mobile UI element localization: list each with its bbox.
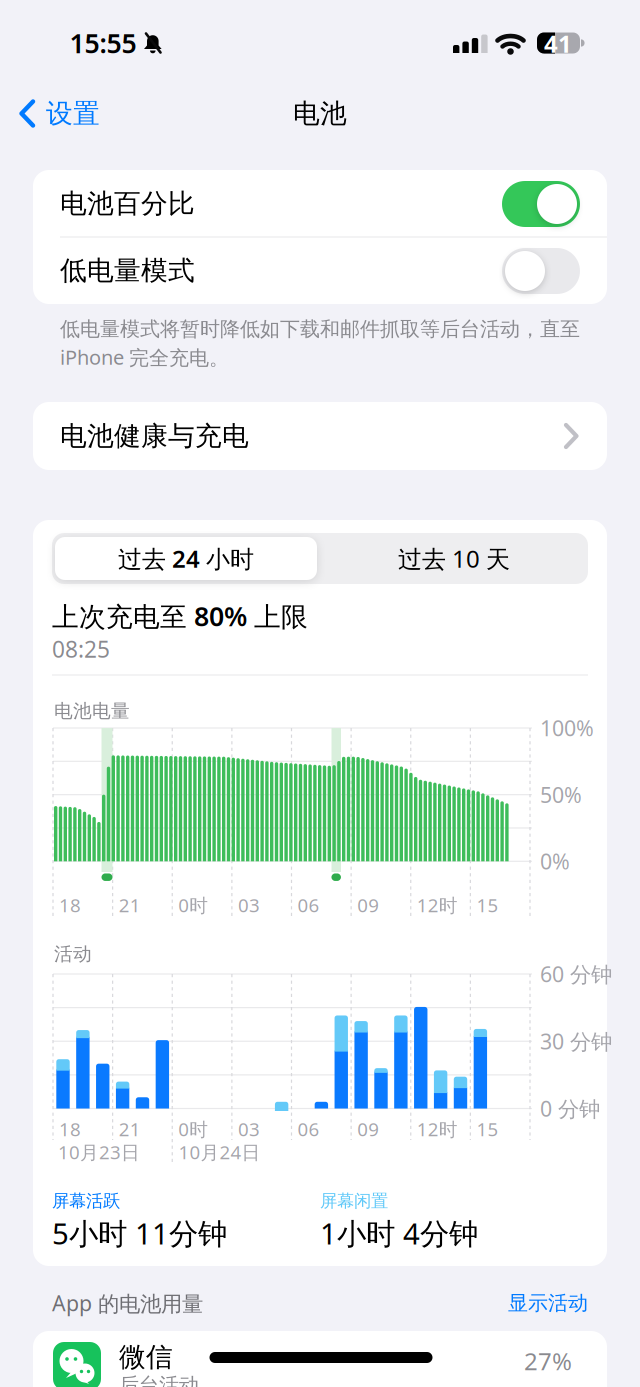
button[interactable]: 过去 24 小时	[55, 537, 317, 580]
staticText: 低电量模式将暂时降低如下载和邮件抓取等后台活动，直至	[60, 317, 580, 341]
staticText: 03	[238, 893, 260, 917]
staticText: 15	[476, 1117, 498, 1141]
staticText: 15:55	[69, 25, 136, 61]
staticText: 18	[59, 1117, 81, 1141]
button[interactable]: 显示活动	[448, 1286, 588, 1320]
staticText: 03	[238, 1117, 260, 1141]
staticText: 41	[544, 28, 572, 59]
staticText: 过去 10 天	[398, 543, 510, 574]
staticText: 06	[297, 1117, 319, 1141]
staticText: 0 分钟	[540, 1094, 600, 1123]
staticText: 10月24日	[178, 1140, 260, 1164]
staticText: 0时	[178, 1117, 208, 1141]
staticText: 21	[119, 1117, 141, 1141]
button[interactable]: 微信	[33, 1331, 607, 1387]
staticText: 15	[476, 893, 498, 917]
staticText: 显示活动	[508, 1291, 588, 1315]
staticText: 30 分钟	[540, 1027, 612, 1055]
button[interactable]: 电池健康与充电	[33, 402, 607, 470]
staticText: 屏幕闲置	[320, 1190, 388, 1212]
staticText: 0时	[178, 893, 208, 917]
staticText: 18	[59, 893, 81, 917]
staticText: 后台活动	[119, 1373, 199, 1387]
staticText: 电池百分比	[60, 187, 195, 220]
staticText: 低电量模式	[60, 254, 195, 287]
staticText: 100%	[540, 714, 594, 742]
staticText: 电池	[293, 97, 347, 130]
staticText: 5小时 11分钟	[52, 1213, 227, 1252]
staticText: 过去 24 小时	[118, 543, 254, 574]
button[interactable]: 返回设置	[12, 88, 122, 138]
staticText: App 的电池用量	[52, 1289, 203, 1317]
button[interactable]: 低电量模式	[33, 237, 607, 304]
staticText: 50%	[540, 780, 582, 809]
staticText: 设置	[46, 97, 100, 130]
staticText: 60 分钟	[540, 960, 612, 988]
staticText: 27%	[524, 1345, 572, 1377]
staticText: 09	[357, 893, 379, 917]
staticText: 电池电量	[54, 699, 130, 722]
staticText: 09	[357, 1117, 379, 1141]
staticText: iPhone 完全充电。	[60, 344, 229, 370]
staticText: 1小时 4分钟	[320, 1213, 478, 1252]
staticText: 上次充电至 80% 上限	[52, 598, 308, 634]
staticText: 08:25	[52, 634, 110, 664]
staticText: 12时	[417, 893, 458, 917]
staticText: 0%	[540, 847, 570, 875]
staticText: 06	[297, 893, 319, 917]
staticText: 21	[119, 893, 141, 917]
button[interactable]: 电池百分比	[33, 170, 607, 237]
staticText: 10月23日	[58, 1140, 140, 1164]
staticText: 屏幕活跃	[52, 1190, 120, 1212]
staticText: 活动	[54, 942, 92, 965]
staticText: 电池健康与充电	[60, 420, 249, 452]
button[interactable]: 过去 10 天	[323, 537, 585, 580]
staticText: 12时	[417, 1117, 458, 1141]
staticText: 微信	[119, 1341, 173, 1373]
